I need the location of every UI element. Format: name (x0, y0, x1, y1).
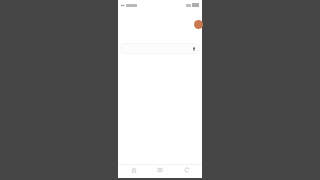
button[interactable]: Collections (149, 165, 171, 175)
button[interactable]: Voice search (120, 43, 200, 54)
button[interactable]: Home (123, 165, 145, 175)
other: Voice search (192, 47, 196, 51)
button[interactable]: Updates (176, 165, 198, 175)
button[interactable]: Profile (194, 20, 203, 29)
